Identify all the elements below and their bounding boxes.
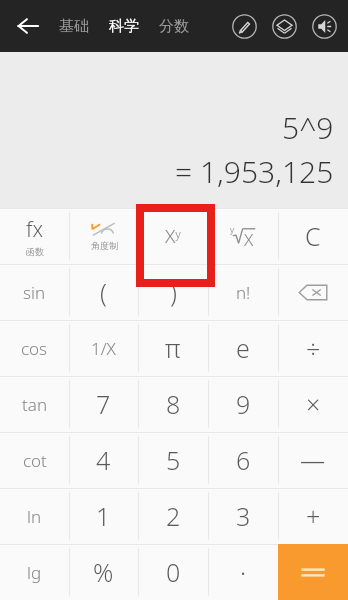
staticText: cot — [23, 449, 47, 472]
staticText: 5^9 — [282, 107, 334, 148]
button[interactable]: sin — [0, 264, 69, 320]
button[interactable]: · — [208, 544, 278, 600]
button[interactable]: Functions — [0, 208, 69, 264]
staticText: Xy — [165, 223, 181, 249]
staticText: X — [244, 228, 254, 251]
button[interactable]: π — [138, 320, 208, 376]
button[interactable]: Equals — [278, 544, 348, 600]
staticText: 基础 — [59, 17, 89, 36]
button[interactable]: ( — [69, 264, 138, 320]
staticText: 角度制 — [91, 240, 118, 251]
staticText: ( — [100, 275, 107, 309]
button[interactable]: + — [278, 488, 348, 544]
staticText: 6 — [236, 443, 251, 477]
button[interactable]: 4 — [69, 432, 138, 488]
staticText: 4 — [96, 443, 111, 477]
staticText: sin — [23, 281, 46, 304]
button[interactable]: 2 — [138, 488, 208, 544]
button[interactable]: Angle mode — [69, 208, 138, 264]
button[interactable]: 1 — [69, 488, 138, 544]
staticText: lg — [27, 561, 42, 584]
staticText: ÷ — [306, 331, 321, 365]
button[interactable]: cot — [0, 432, 69, 488]
staticText: = 1,953,125 — [175, 151, 334, 192]
button[interactable]: 7 — [69, 376, 138, 432]
button[interactable]: ln — [0, 488, 69, 544]
staticText: % — [93, 555, 114, 589]
staticText: · — [240, 555, 247, 589]
button[interactable]: Sound — [304, 6, 344, 46]
button[interactable]: 6 — [208, 432, 278, 488]
button[interactable]: 5 — [138, 432, 208, 488]
button[interactable]: ) — [138, 264, 208, 320]
button[interactable]: 1/X — [69, 320, 138, 376]
staticText: 分数 — [159, 17, 189, 36]
button[interactable]: 科学 — [104, 9, 144, 44]
staticText: 函数 — [26, 246, 44, 257]
button[interactable]: n! — [208, 264, 278, 320]
staticText: fx — [26, 215, 44, 244]
button[interactable]: 分数 — [154, 9, 194, 44]
button[interactable]: Back — [6, 4, 50, 48]
staticText: 7 — [96, 387, 111, 421]
staticText: ln — [27, 505, 42, 528]
button[interactable]: e — [208, 320, 278, 376]
button[interactable]: 8 — [138, 376, 208, 432]
staticText: ) — [170, 275, 177, 309]
button[interactable]: tan — [0, 376, 69, 432]
staticText: tan — [22, 393, 48, 416]
button[interactable]: 3 — [208, 488, 278, 544]
staticText: × — [306, 387, 321, 421]
button[interactable]: History — [264, 6, 304, 46]
staticText: y — [230, 223, 235, 235]
button[interactable]: 0 — [138, 544, 208, 600]
staticText: — — [300, 443, 326, 477]
button[interactable]: × — [278, 376, 348, 432]
staticText: + — [306, 499, 321, 533]
button[interactable]: 基础 — [54, 9, 94, 44]
button[interactable]: C — [278, 208, 348, 264]
staticText: 8 — [166, 387, 181, 421]
button[interactable]: 9 — [208, 376, 278, 432]
staticText: 5 — [166, 443, 181, 477]
button[interactable]: x to the power y — [138, 208, 208, 264]
button[interactable]: cos — [0, 320, 69, 376]
staticText: π — [165, 331, 181, 365]
staticText: C — [305, 219, 321, 253]
button[interactable]: y-th root of x — [208, 208, 278, 264]
staticText: e — [236, 331, 250, 365]
button[interactable]: lg — [0, 544, 69, 600]
staticText: cos — [21, 337, 48, 360]
button[interactable]: % — [69, 544, 138, 600]
staticText: 1/X — [91, 337, 116, 360]
button[interactable]: Backspace — [278, 264, 348, 320]
staticText: 0 — [166, 555, 181, 589]
staticText: 1 — [96, 499, 111, 533]
button[interactable]: Edit — [224, 6, 264, 46]
staticText: 9 — [236, 387, 251, 421]
staticText: 2 — [166, 499, 181, 533]
staticText: 科学 — [109, 17, 139, 36]
button[interactable]: — — [278, 432, 348, 488]
staticText: n! — [236, 281, 251, 304]
button[interactable]: ÷ — [278, 320, 348, 376]
staticText: 3 — [236, 499, 251, 533]
